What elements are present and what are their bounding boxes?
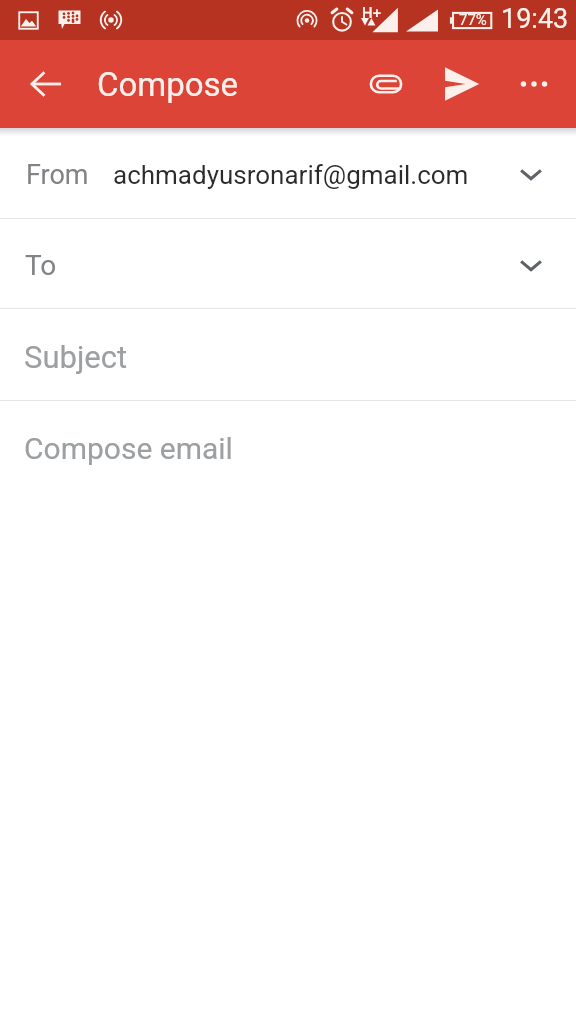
- staticText: 77%: [459, 11, 487, 29]
- button[interactable]: More options: [502, 52, 566, 116]
- staticText: To: [25, 249, 57, 282]
- staticText: H+: [362, 4, 381, 22]
- button[interactable]: Expand from: [507, 149, 555, 197]
- button[interactable]: From: [0, 128, 576, 218]
- staticText: Compose: [97, 65, 239, 104]
- button[interactable]: Subject: [0, 309, 576, 400]
- button[interactable]: Compose email: [0, 401, 576, 1024]
- button[interactable]: Send: [429, 52, 493, 116]
- staticText: Subject: [24, 339, 128, 375]
- button[interactable]: Navigate up: [22, 60, 70, 108]
- staticText: 19:43: [501, 3, 569, 35]
- button[interactable]: Attach file: [354, 52, 418, 116]
- staticText: Compose email: [24, 431, 233, 466]
- staticText: From: [26, 159, 89, 191]
- button[interactable]: Expand recipients: [507, 240, 555, 288]
- button[interactable]: To: [0, 219, 576, 308]
- staticText: achmadyusronarif@gmail.com: [113, 160, 469, 190]
